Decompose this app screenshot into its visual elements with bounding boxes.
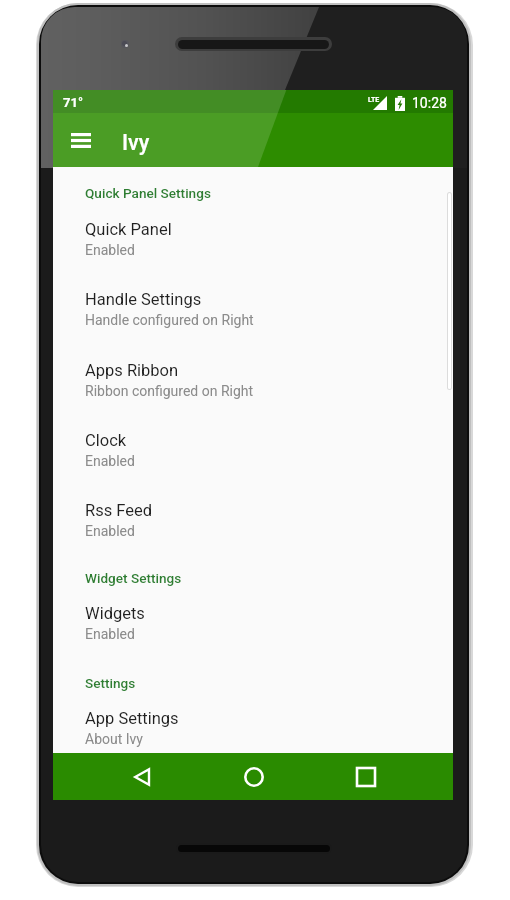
button[interactable]: Quick Panel xyxy=(53,218,453,264)
button[interactable]: App Settings xyxy=(53,707,453,753)
staticText: Enabled xyxy=(85,242,135,258)
staticText: Quick Panel Settings xyxy=(85,185,211,201)
staticText: Handle Settings xyxy=(85,290,202,309)
staticText: App Settings xyxy=(85,709,179,728)
staticText: 71° xyxy=(63,95,83,110)
button[interactable]: Apps Ribbon xyxy=(53,359,453,405)
button[interactable]: Open navigation drawer xyxy=(62,118,100,162)
staticText: Enabled xyxy=(85,626,135,642)
staticText: Rss Feed xyxy=(85,501,153,520)
staticText: LTE xyxy=(368,96,380,104)
button[interactable]: Home xyxy=(230,753,278,800)
staticText: Clock xyxy=(85,431,127,450)
staticText: 10:28 xyxy=(412,95,447,111)
staticText: Handle configured on Right xyxy=(85,312,254,328)
button[interactable]: Widget Settings xyxy=(53,568,453,588)
button[interactable]: Back xyxy=(118,753,166,800)
staticText: About Ivy xyxy=(85,731,143,747)
staticText: Widgets xyxy=(85,604,145,623)
button[interactable]: Widgets xyxy=(53,602,453,648)
button[interactable]: Settings xyxy=(53,673,453,693)
button[interactable]: Quick Panel Settings xyxy=(53,183,453,203)
button[interactable]: Handle Settings xyxy=(53,288,453,334)
staticText: Widget Settings xyxy=(85,570,182,586)
button[interactable]: Recent apps xyxy=(342,753,390,800)
staticText: Settings xyxy=(85,675,136,691)
button[interactable]: Clock xyxy=(53,429,453,475)
staticText: Apps Ribbon xyxy=(85,361,179,380)
button[interactable]: Rss Feed xyxy=(53,499,453,545)
staticText: Ribbon configured on Right xyxy=(85,383,254,399)
staticText: Quick Panel xyxy=(85,220,172,239)
staticText: Enabled xyxy=(85,523,135,539)
staticText: Ivy xyxy=(122,130,150,155)
staticText: Enabled xyxy=(85,453,135,469)
